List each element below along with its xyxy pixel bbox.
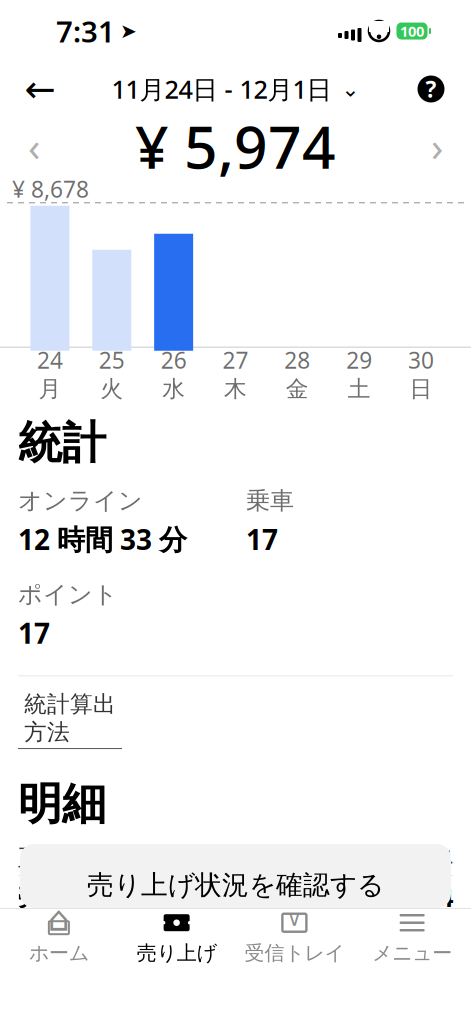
staticText: ¥ 5,974 (135, 107, 336, 185)
staticText: 24 (37, 345, 63, 375)
staticText: 30 (408, 345, 434, 375)
staticText: 土 (348, 375, 371, 403)
staticText: 売り上げ状況を確認する (87, 869, 384, 901)
button[interactable]: 前の週 (10, 117, 58, 175)
staticText: ポイント (18, 580, 118, 609)
staticText: 28 (284, 345, 310, 375)
staticText: 売り上げ総額 (18, 881, 170, 913)
staticText: 7:31 (56, 11, 115, 50)
staticText: 統計 (18, 416, 106, 470)
button[interactable]: ヘルプ (405, 64, 457, 114)
staticText: 金 (286, 375, 309, 403)
button[interactable]: 売り上げ (118, 909, 236, 967)
staticText: オンライン (18, 486, 143, 515)
staticText: 明細 (18, 777, 106, 831)
staticText: › (431, 119, 443, 172)
button[interactable]: ∨ (235, 909, 353, 967)
button[interactable]: ⌂ (0, 909, 118, 967)
staticText: ⌂ (48, 899, 70, 938)
staticText: 29 (346, 345, 372, 375)
staticText: 26 (161, 345, 187, 375)
staticText: 25 (99, 345, 125, 375)
staticText: ∨ (287, 907, 302, 930)
button[interactable]: 売り上げ状況を確認する (20, 844, 451, 908)
staticText: ホーム (29, 941, 89, 965)
staticText: 統計算出方法 (24, 690, 116, 746)
staticText: 日 (410, 375, 433, 403)
button[interactable]: 統計算出方法 (18, 676, 453, 755)
staticText: ‹ (28, 119, 40, 172)
staticText: 12 時間 33 分 (18, 520, 187, 558)
staticText: ¥ 8,678 (12, 174, 89, 204)
staticText: 11月24日 - 12月1日 (111, 72, 331, 106)
staticText: 17 (18, 614, 50, 651)
staticText: 27 (222, 345, 248, 375)
button[interactable]: メニュー (353, 909, 471, 967)
button[interactable]: 戻る (14, 64, 66, 114)
staticText: メニュー (372, 941, 452, 965)
staticText: 月 (38, 375, 61, 403)
button[interactable]: 次の週 (413, 117, 461, 175)
staticText: 正味の料金 (18, 843, 139, 873)
staticText: ➤ (120, 20, 137, 42)
staticText: 乗車 (246, 486, 294, 515)
staticText: 受信トレイ (244, 941, 344, 965)
staticText: 水 (162, 375, 185, 403)
staticText: 木 (224, 375, 247, 403)
staticText: 100 (400, 21, 424, 41)
staticText: 売り上げ (137, 941, 217, 965)
button[interactable]: 11月24日 - 12月1日 (103, 64, 367, 114)
staticText: ¥ 5,974 (369, 880, 453, 914)
staticText: ¥ 5,974 (371, 842, 453, 874)
staticText: ← (24, 68, 55, 110)
staticText: ? (425, 74, 436, 104)
staticText: 火 (100, 375, 123, 403)
staticText: 17 (246, 520, 278, 558)
staticText: ⌄ (341, 77, 359, 101)
